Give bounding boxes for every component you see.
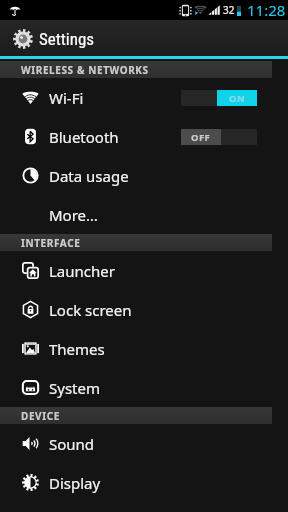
button[interactable]: More… [0, 195, 288, 234]
staticText: Launcher [49, 261, 115, 281]
staticText: Themes [49, 339, 105, 359]
button[interactable]: OFF [181, 129, 257, 145]
staticText: Bluetooth [49, 127, 119, 147]
staticText: OFF [191, 131, 211, 144]
staticText: ON [229, 92, 246, 105]
button[interactable]: System [0, 368, 288, 407]
staticText: Lock screen [49, 300, 132, 320]
staticText: INTERFACE [21, 236, 81, 250]
button[interactable]: Wi-Fi [0, 78, 288, 117]
staticText: Sound [49, 434, 95, 454]
staticText: WIRELESS & NETWORKS [21, 63, 149, 77]
button[interactable]: Themes [0, 329, 288, 368]
staticText: More… [49, 205, 98, 225]
button[interactable]: Data usage [0, 156, 288, 195]
button[interactable]: Sound [0, 424, 288, 463]
button[interactable]: Lock screen [0, 290, 288, 329]
button[interactable]: ON [181, 90, 257, 106]
staticText: Display [49, 473, 101, 493]
button[interactable]: Settings [0, 20, 288, 56]
button[interactable]: Display [0, 463, 288, 502]
staticText: Data usage [49, 166, 129, 186]
staticText: Wi-Fi [49, 88, 84, 108]
staticText: Settings [39, 29, 95, 49]
button[interactable]: Launcher [0, 251, 288, 290]
staticText: System [49, 378, 100, 398]
staticText: 11:28 [247, 0, 286, 20]
button[interactable]: Bluetooth [0, 117, 288, 156]
staticText: 32 [223, 3, 235, 17]
staticText: DEVICE [21, 409, 60, 423]
other: Weather [9, 4, 21, 16]
